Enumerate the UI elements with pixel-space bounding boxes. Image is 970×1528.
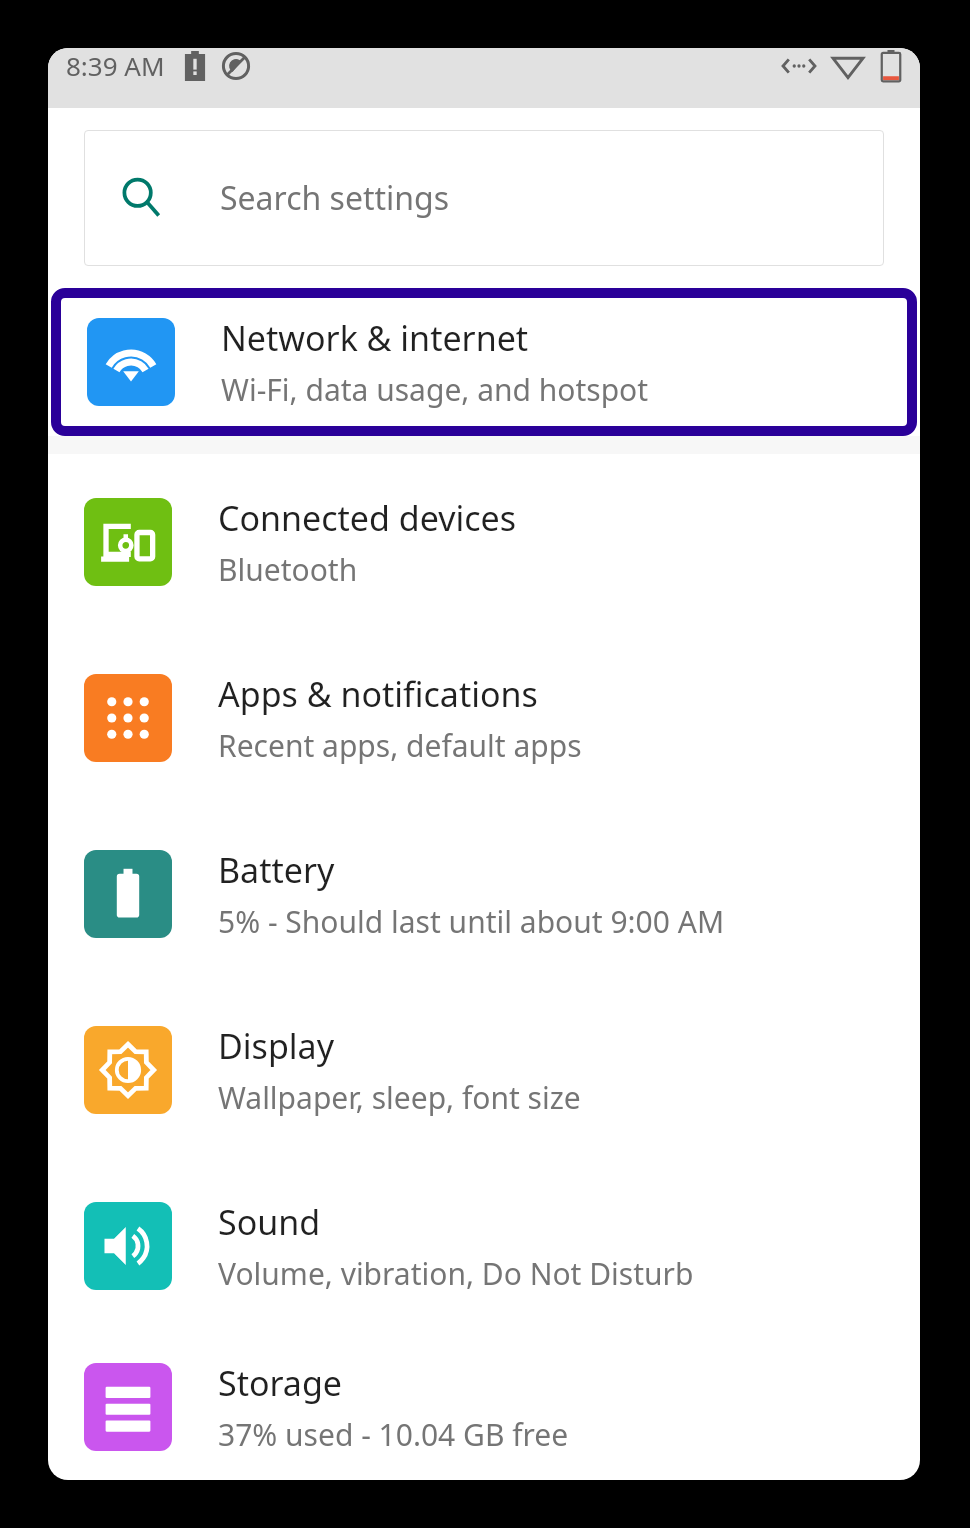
- button[interactable]: Sound: [48, 1158, 920, 1334]
- staticText: Search settings: [220, 176, 450, 220]
- button[interactable]: Network & internet: [51, 288, 917, 436]
- staticText: 37% used - 10.04 GB free: [218, 1414, 569, 1455]
- staticText: Wi-Fi, data usage, and hotspot: [221, 369, 649, 410]
- staticText: Display: [218, 1023, 334, 1069]
- staticText: Sound: [218, 1199, 321, 1245]
- staticText: 5% - Should last until about 9:00 AM: [218, 901, 725, 942]
- button[interactable]: Display: [48, 982, 920, 1158]
- staticText: Recent apps, default apps: [218, 725, 582, 766]
- staticText: Wallpaper, sleep, font size: [218, 1077, 581, 1118]
- staticText: 8:39 AM: [66, 48, 165, 83]
- button[interactable]: Battery: [48, 806, 920, 982]
- staticText: Volume, vibration, Do Not Disturb: [218, 1253, 694, 1294]
- staticText: Battery: [218, 847, 335, 893]
- staticText: Bluetooth: [218, 549, 358, 590]
- staticText: Network & internet: [221, 315, 529, 361]
- staticText: Storage: [218, 1360, 343, 1406]
- button[interactable]: Apps & notifications: [48, 630, 920, 806]
- button[interactable]: Connected devices: [48, 454, 920, 630]
- button[interactable]: Storage: [48, 1334, 920, 1480]
- staticText: Apps & notifications: [218, 671, 538, 717]
- button[interactable]: Search settings: [84, 130, 884, 266]
- staticText: Connected devices: [218, 495, 517, 541]
